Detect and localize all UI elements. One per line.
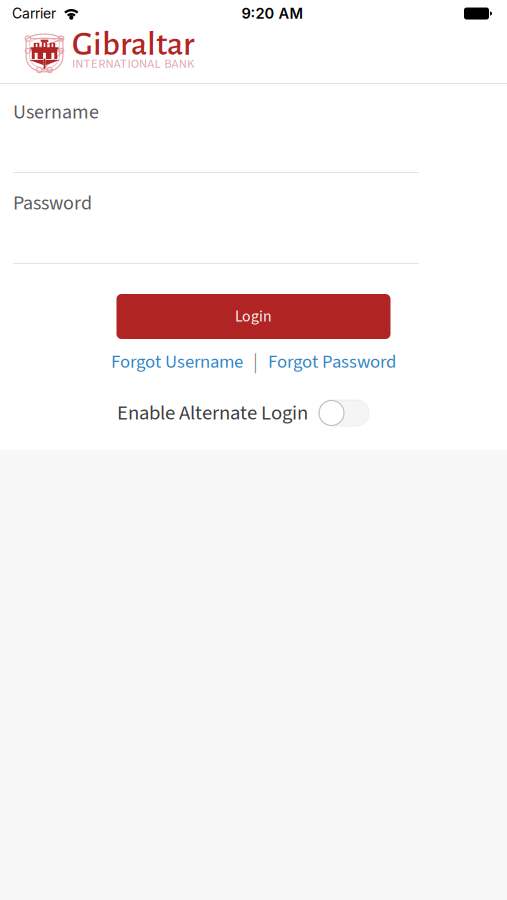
staticText: Enable Alternate Login (117, 398, 308, 428)
button[interactable]: Forgot Password (268, 349, 396, 375)
staticText: Login (235, 305, 272, 328)
staticText: Forgot Username (111, 349, 243, 375)
staticText: INTERNATIONAL BANK (72, 55, 194, 73)
staticText: | (253, 348, 258, 376)
button[interactable]: Login (116, 294, 390, 339)
staticText: Gibraltar (72, 27, 195, 62)
staticText: Forgot Password (268, 349, 396, 375)
staticText: Username (13, 98, 99, 126)
staticText: Password (13, 189, 92, 217)
staticText: 9:20 AM (241, 5, 303, 22)
button[interactable]: Enable Alternate Login (319, 400, 369, 426)
staticText: Carrier (12, 5, 56, 22)
button[interactable]: Forgot Username (111, 349, 243, 375)
